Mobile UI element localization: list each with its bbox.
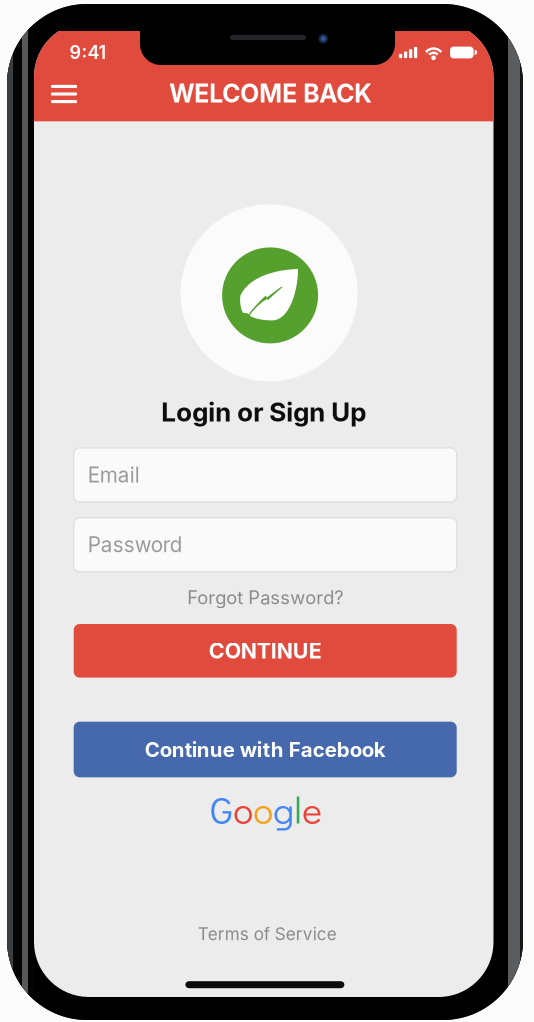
staticText: Forgot Password? [187, 587, 343, 609]
staticText: l [294, 784, 302, 833]
staticText: Email [88, 462, 140, 487]
staticText: WELCOME BACK [169, 79, 372, 108]
staticText: o [253, 784, 273, 833]
staticText: Terms of Service [198, 924, 337, 944]
staticText: 9:41 [69, 42, 106, 63]
staticText: G [210, 784, 233, 833]
button[interactable]: Continue with Facebook [74, 722, 457, 777]
button[interactable]: Password [74, 518, 457, 572]
staticText: g [273, 784, 294, 833]
staticText: e [302, 784, 322, 833]
button[interactable]: Forgot Password? [74, 586, 457, 610]
staticText: Continue with Facebook [145, 737, 386, 762]
button[interactable]: Continue with Google [75, 787, 458, 831]
staticText: o [233, 784, 253, 833]
button[interactable]: Email [74, 448, 457, 502]
staticText: CONTINUE [209, 638, 322, 664]
button[interactable]: Menu [37, 72, 91, 116]
button[interactable]: CONTINUE [74, 624, 457, 678]
staticText: Login or Sign Up [161, 396, 366, 428]
button[interactable]: Terms of Service [76, 923, 459, 945]
staticText: Password [88, 532, 183, 557]
